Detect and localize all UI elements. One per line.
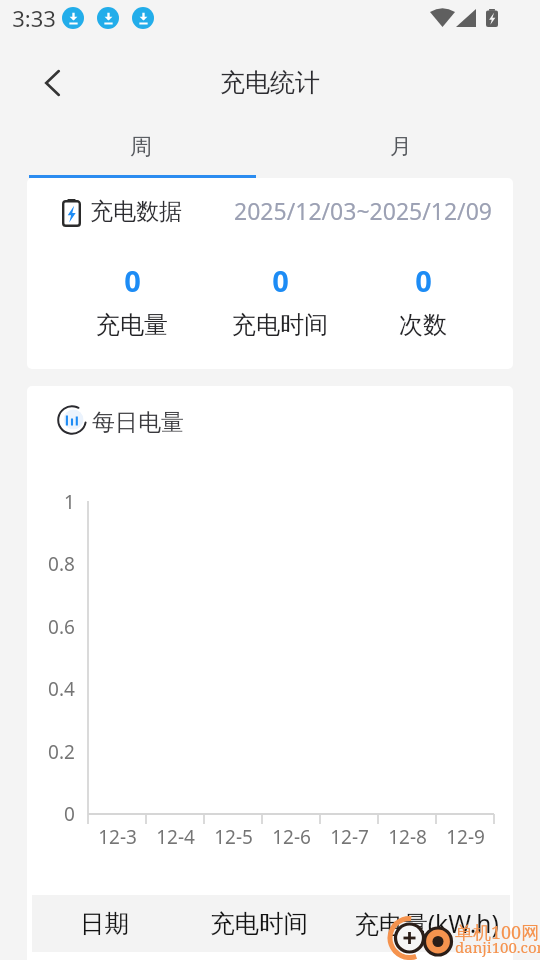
- staticText: 周: [130, 133, 152, 161]
- button[interactable]: 充电量(kW.h): [336, 898, 513, 949]
- button[interactable]: 周: [13, 112, 269, 178]
- staticText: 0: [64, 801, 75, 827]
- staticText: 0: [415, 261, 432, 300]
- button[interactable]: 月: [259, 112, 540, 178]
- staticText: 0: [124, 261, 141, 300]
- staticText: 1: [64, 489, 75, 515]
- staticText: 12-6: [272, 824, 311, 850]
- staticText: 次数: [399, 310, 447, 340]
- button[interactable]: 日期: [27, 898, 194, 949]
- staticText: 0.4: [48, 676, 75, 702]
- staticText: 0.2: [48, 739, 75, 765]
- button[interactable]: Back: [24, 55, 80, 111]
- staticText: 充电量(kW.h): [354, 907, 499, 940]
- staticText: 0.8: [48, 551, 75, 577]
- staticText: 12-5: [214, 824, 253, 850]
- staticText: 充电时间: [232, 310, 328, 340]
- staticText: 12-4: [156, 824, 195, 850]
- staticText: 3:33: [12, 3, 56, 33]
- staticText: 12-7: [330, 824, 369, 850]
- staticText: 0.6: [48, 614, 75, 640]
- staticText: 0: [272, 261, 289, 300]
- staticText: 12-3: [98, 824, 137, 850]
- staticText: 12-9: [446, 824, 485, 850]
- staticText: 2025/12/03~2025/12/09: [234, 195, 492, 226]
- staticText: 单机100网: [455, 920, 540, 945]
- staticText: 日期: [80, 908, 129, 939]
- staticText: danji100.com: [455, 937, 540, 957]
- staticText: 月: [390, 133, 412, 161]
- staticText: 每日电量: [92, 408, 184, 437]
- staticText: 充电时间: [210, 908, 308, 939]
- staticText: 12-8: [388, 824, 427, 850]
- staticText: 充电数据: [90, 197, 182, 226]
- staticText: 充电量: [96, 310, 168, 340]
- staticText: 充电统计: [220, 67, 320, 98]
- button[interactable]: 充电时间: [169, 898, 349, 949]
